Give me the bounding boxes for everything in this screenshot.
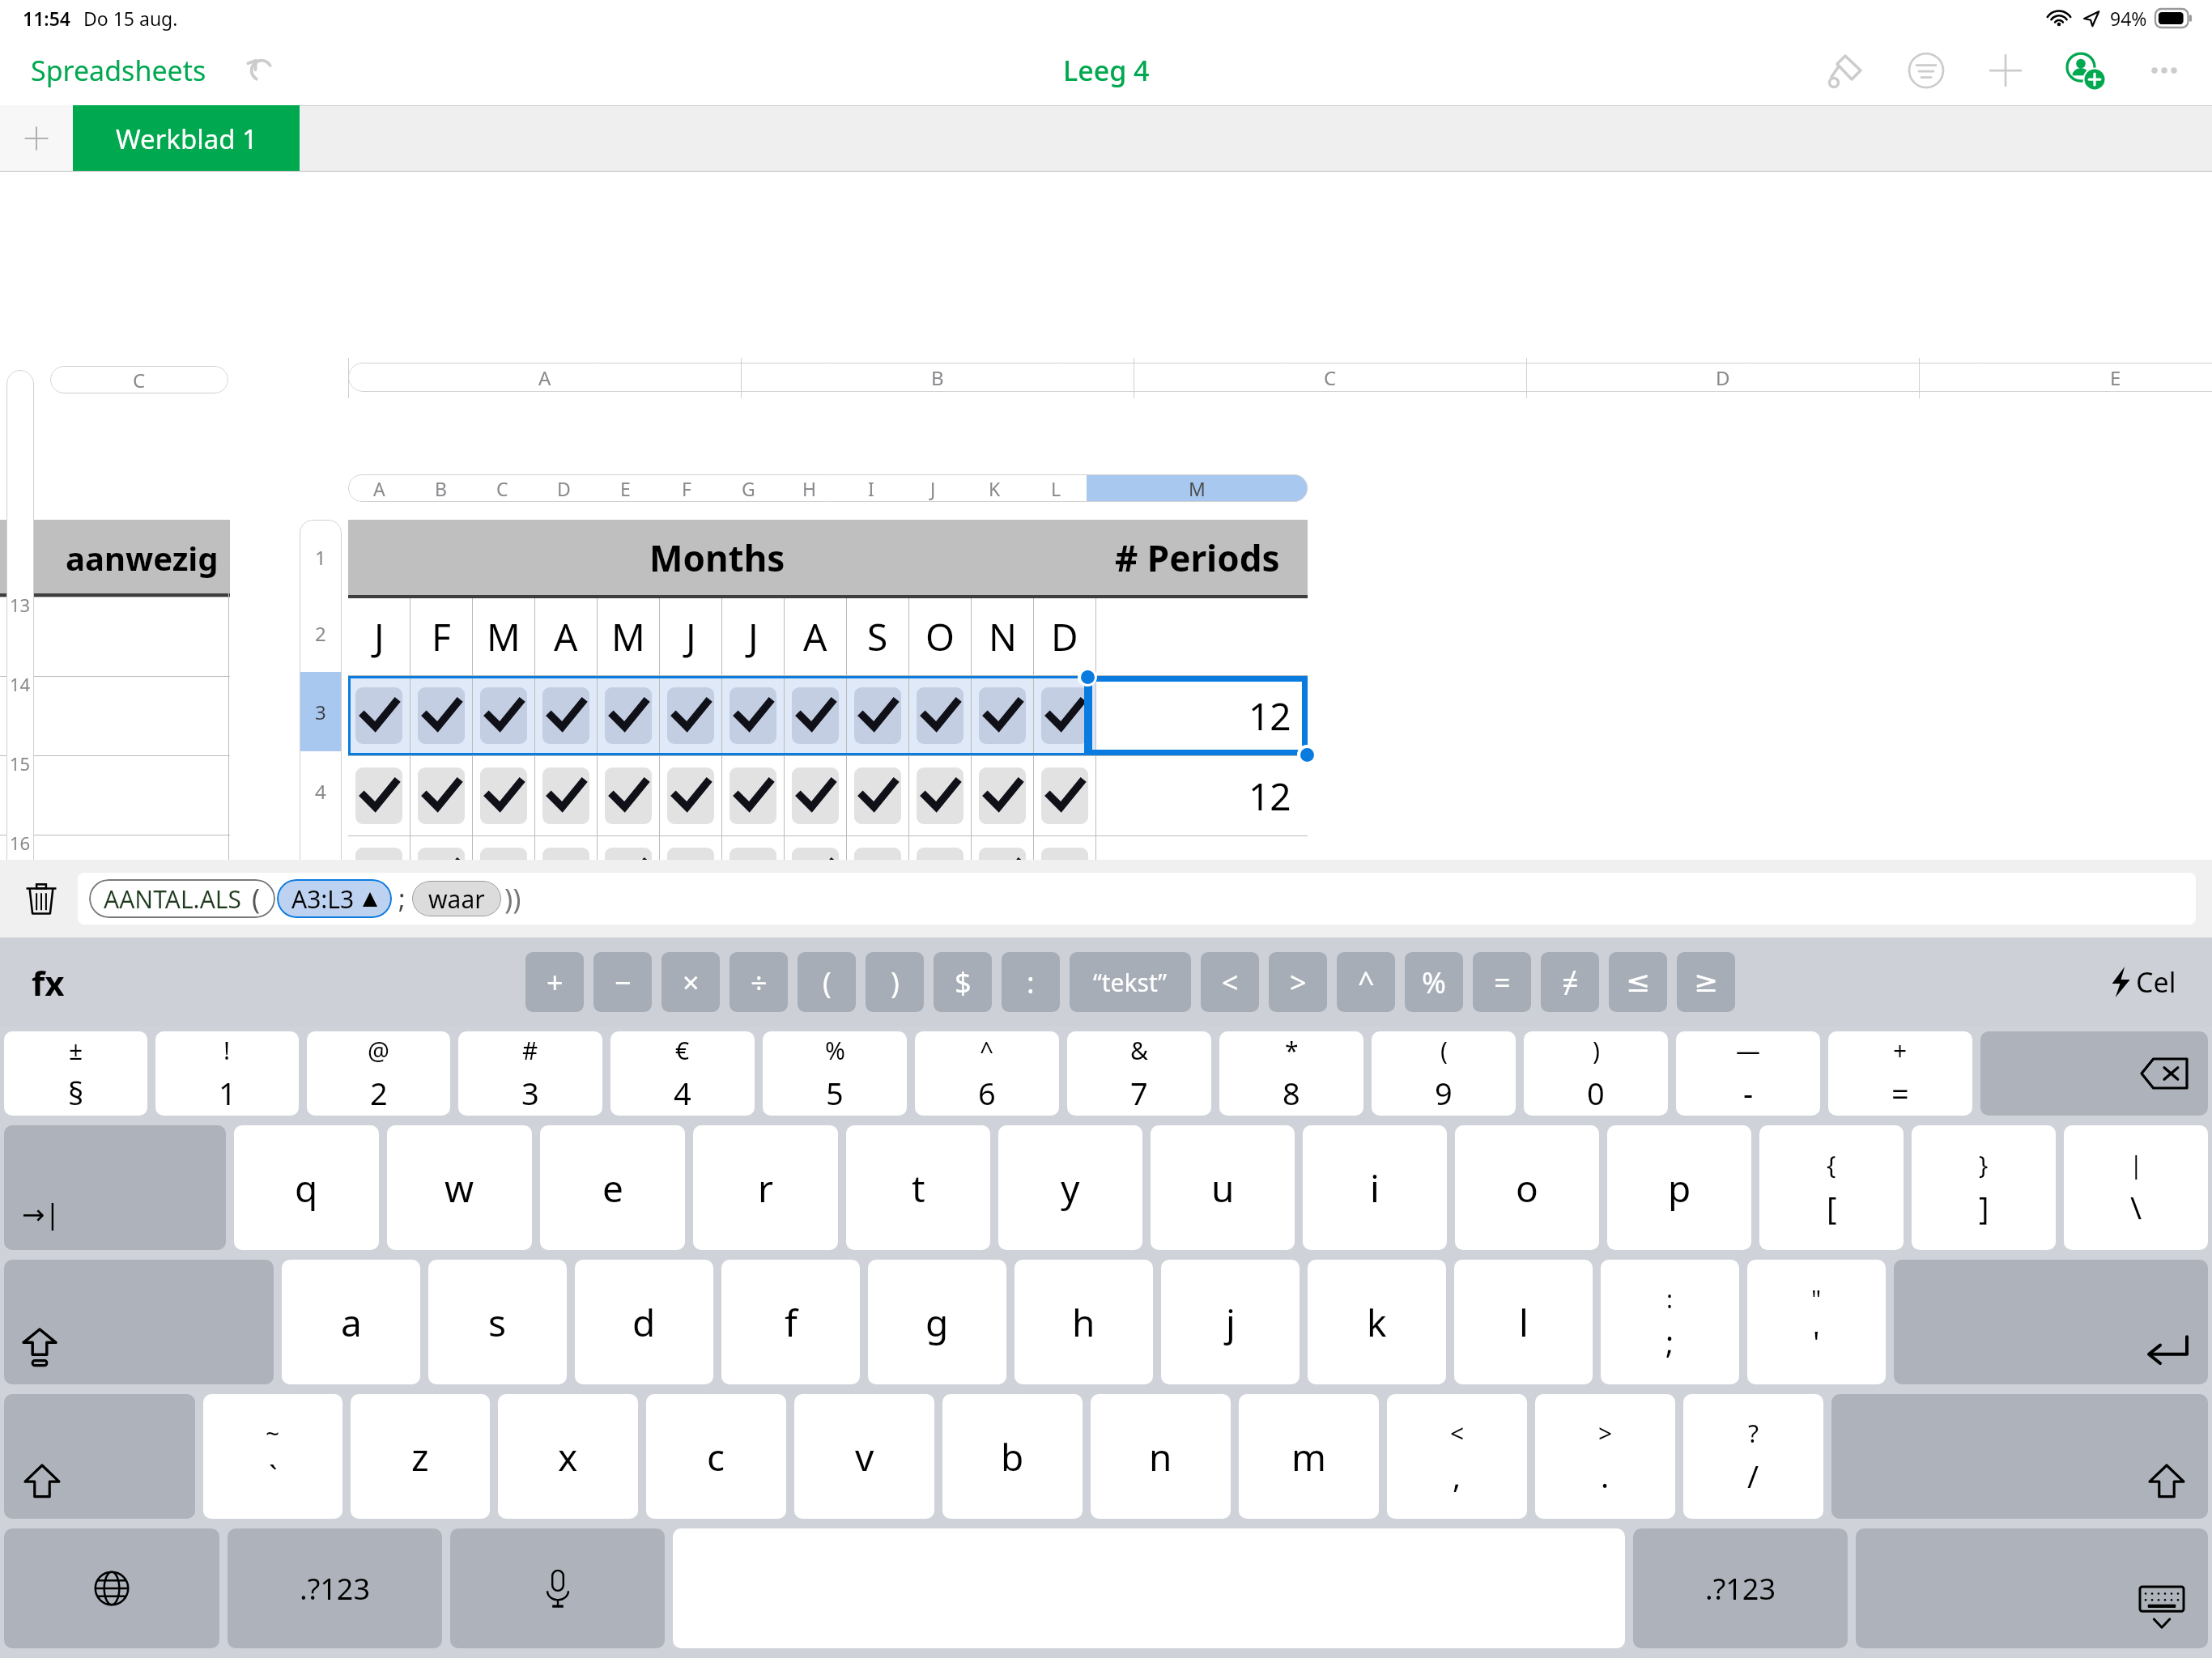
button[interactable]: A3:L3 [277,879,392,918]
button[interactable]: Return [1894,1260,2208,1384]
button[interactable]: ≠ [1541,952,1599,1012]
button[interactable]: € [610,1031,755,1116]
button[interactable]: ? [1683,1394,1823,1519]
button[interactable]: k [1308,1260,1446,1384]
button[interactable] [660,676,721,755]
button[interactable]: ) [1524,1031,1668,1116]
button[interactable]: ! [155,1031,299,1116]
button[interactable]: Add sheet [0,105,73,172]
button[interactable]: % [1405,952,1463,1012]
button[interactable]: M [1087,474,1308,502]
button[interactable]: Caps lock [4,1260,274,1384]
button[interactable]: 6 [300,910,342,989]
button[interactable] [847,836,908,916]
button[interactable] [972,916,1033,996]
button[interactable]: 5 [300,831,342,910]
button[interactable] [598,916,659,996]
button[interactable]: g [868,1260,1006,1384]
button[interactable]: Insert [1980,45,2031,96]
button[interactable]: z [351,1394,490,1519]
button[interactable]: I [840,474,902,502]
button[interactable]: { [1759,1125,1904,1250]
button[interactable] [473,916,534,996]
button[interactable]: @ [307,1031,450,1116]
button[interactable]: M [473,598,534,675]
button[interactable]: j [1161,1260,1300,1384]
button[interactable]: J [660,598,721,675]
button[interactable]: F [410,598,472,675]
button[interactable]: < [1387,1394,1527,1519]
button[interactable]: x [498,1394,638,1519]
button[interactable]: Space [673,1528,1625,1648]
button[interactable]: n [1091,1394,1231,1519]
button[interactable]: v [794,1394,934,1519]
button[interactable]: < [1201,952,1259,1012]
button[interactable]: K [963,474,1025,502]
button[interactable]: A [535,598,597,675]
button[interactable]: J [722,598,784,675]
button[interactable]: D [1034,598,1095,675]
button[interactable]: ≥ [1677,952,1735,1012]
button[interactable] [473,756,534,835]
button[interactable] [972,756,1033,835]
button[interactable]: Undo [236,45,287,96]
button[interactable]: u [1151,1125,1295,1250]
button[interactable] [535,836,597,916]
button[interactable]: = [1473,952,1531,1012]
button[interactable]: " [1747,1260,1886,1384]
button[interactable] [1034,756,1095,835]
button[interactable]: M [598,598,659,675]
button[interactable]: r [693,1125,838,1250]
button[interactable]: i [1303,1125,1447,1250]
button[interactable]: Cel [2104,959,2183,1005]
button[interactable]: f [721,1260,860,1384]
button[interactable]: E [594,474,656,502]
button[interactable]: — [1676,1031,1820,1116]
button[interactable]: ± [4,1031,147,1116]
button[interactable]: l [1454,1260,1593,1384]
button[interactable]: s [428,1260,567,1384]
button[interactable]: .?123 [228,1528,442,1648]
button[interactable]: > [1269,952,1327,1012]
button[interactable] [1034,916,1095,996]
button[interactable]: Werkblad 1 [73,105,300,172]
button[interactable] [909,756,971,835]
button[interactable]: Selection handle end [1297,745,1317,764]
button[interactable]: Shift [1831,1394,2208,1519]
button[interactable] [410,836,472,916]
button[interactable]: ÷ [730,952,788,1012]
button[interactable]: ^ [1337,952,1395,1012]
button[interactable] [535,676,597,755]
button[interactable]: Change keyboard language [4,1528,219,1648]
button[interactable]: > [1535,1394,1675,1519]
button[interactable]: Months [348,520,1087,595]
button[interactable]: & [1067,1031,1211,1116]
button[interactable] [909,916,971,996]
button[interactable] [847,756,908,835]
button[interactable]: ~ [203,1394,342,1519]
button[interactable]: e [540,1125,685,1250]
button[interactable]: d [575,1260,713,1384]
button[interactable] [722,916,784,996]
button[interactable]: L [1025,474,1087,502]
button[interactable]: O [909,598,971,675]
button[interactable] [1034,836,1095,916]
button[interactable]: G [717,474,779,502]
button[interactable]: Spreadsheets [24,47,213,94]
button[interactable]: b [942,1394,1083,1519]
button[interactable]: h [1015,1260,1153,1384]
button[interactable]: Tab [4,1125,226,1250]
button[interactable] [410,676,472,755]
button[interactable] [473,836,534,916]
button[interactable] [598,836,659,916]
button[interactable]: 12 [1096,756,1308,835]
button[interactable]: | [2064,1125,2208,1250]
button[interactable]: $ [934,952,992,1012]
button[interactable] [972,676,1033,755]
button[interactable]: F [656,474,717,502]
button[interactable] [410,756,472,835]
button[interactable]: H [779,474,840,502]
button[interactable]: + [1828,1031,1972,1116]
button[interactable]: c [646,1394,786,1519]
button[interactable]: # Periods [1087,520,1308,595]
